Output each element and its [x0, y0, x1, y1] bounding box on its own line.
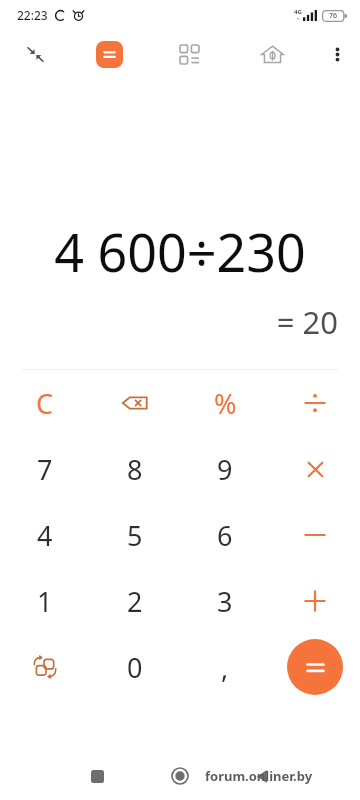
button[interactable]: Unit conversion [0, 634, 90, 700]
button[interactable]: Back [242, 755, 284, 797]
staticText: 5 [127, 517, 143, 554]
button[interactable]: Recent apps [76, 755, 118, 797]
staticText: , [221, 649, 229, 686]
staticText: C [36, 385, 54, 422]
staticText: 8 [127, 451, 143, 488]
staticText: 6 [217, 517, 233, 554]
button[interactable]: Add [270, 568, 360, 634]
button[interactable]: 2 [90, 568, 180, 634]
button[interactable]: 4 [0, 502, 90, 568]
button[interactable]: 7 [0, 436, 90, 502]
button[interactable]: 9 [180, 436, 270, 502]
button[interactable]: Equals [287, 639, 343, 695]
button[interactable]: Backspace [90, 370, 180, 436]
button[interactable]: , [180, 634, 270, 700]
button[interactable]: % [180, 370, 270, 436]
staticText: 2 [127, 583, 143, 620]
button[interactable]: 5 [90, 502, 180, 568]
staticText: 7 [37, 451, 53, 488]
staticText: 1 [37, 583, 53, 620]
button[interactable]: Mortgage calculator [230, 30, 314, 78]
staticText: 4 600÷230 [22, 216, 338, 287]
staticText: 3 [217, 583, 233, 620]
button[interactable]: Collapse [0, 30, 70, 78]
staticText: 76 [329, 11, 338, 21]
staticText: 22:23 [17, 7, 48, 23]
staticText: 4 [37, 517, 53, 554]
button[interactable]: Divide [270, 370, 360, 436]
button[interactable]: Subtract [270, 502, 360, 568]
staticText: % [214, 385, 237, 422]
button[interactable]: 6 [180, 502, 270, 568]
button[interactable]: Multiply [270, 436, 360, 502]
staticText: 0 [127, 649, 143, 686]
staticText: ᴴ [297, 16, 300, 23]
staticText: forum.onliner.by [205, 767, 313, 785]
button[interactable]: 0 [90, 634, 180, 700]
staticText: 9 [217, 451, 233, 488]
staticText: 4G [294, 8, 302, 16]
staticText: = 20 [22, 301, 338, 343]
button[interactable]: 3 [180, 568, 270, 634]
button[interactable]: C [0, 370, 90, 436]
button[interactable]: 8 [90, 436, 180, 502]
button[interactable]: Home [159, 755, 201, 797]
button[interactable]: 1 [0, 568, 90, 634]
button[interactable]: Converters [148, 30, 230, 78]
button[interactable]: More options [314, 30, 360, 78]
button[interactable]: Calculator [70, 30, 148, 78]
